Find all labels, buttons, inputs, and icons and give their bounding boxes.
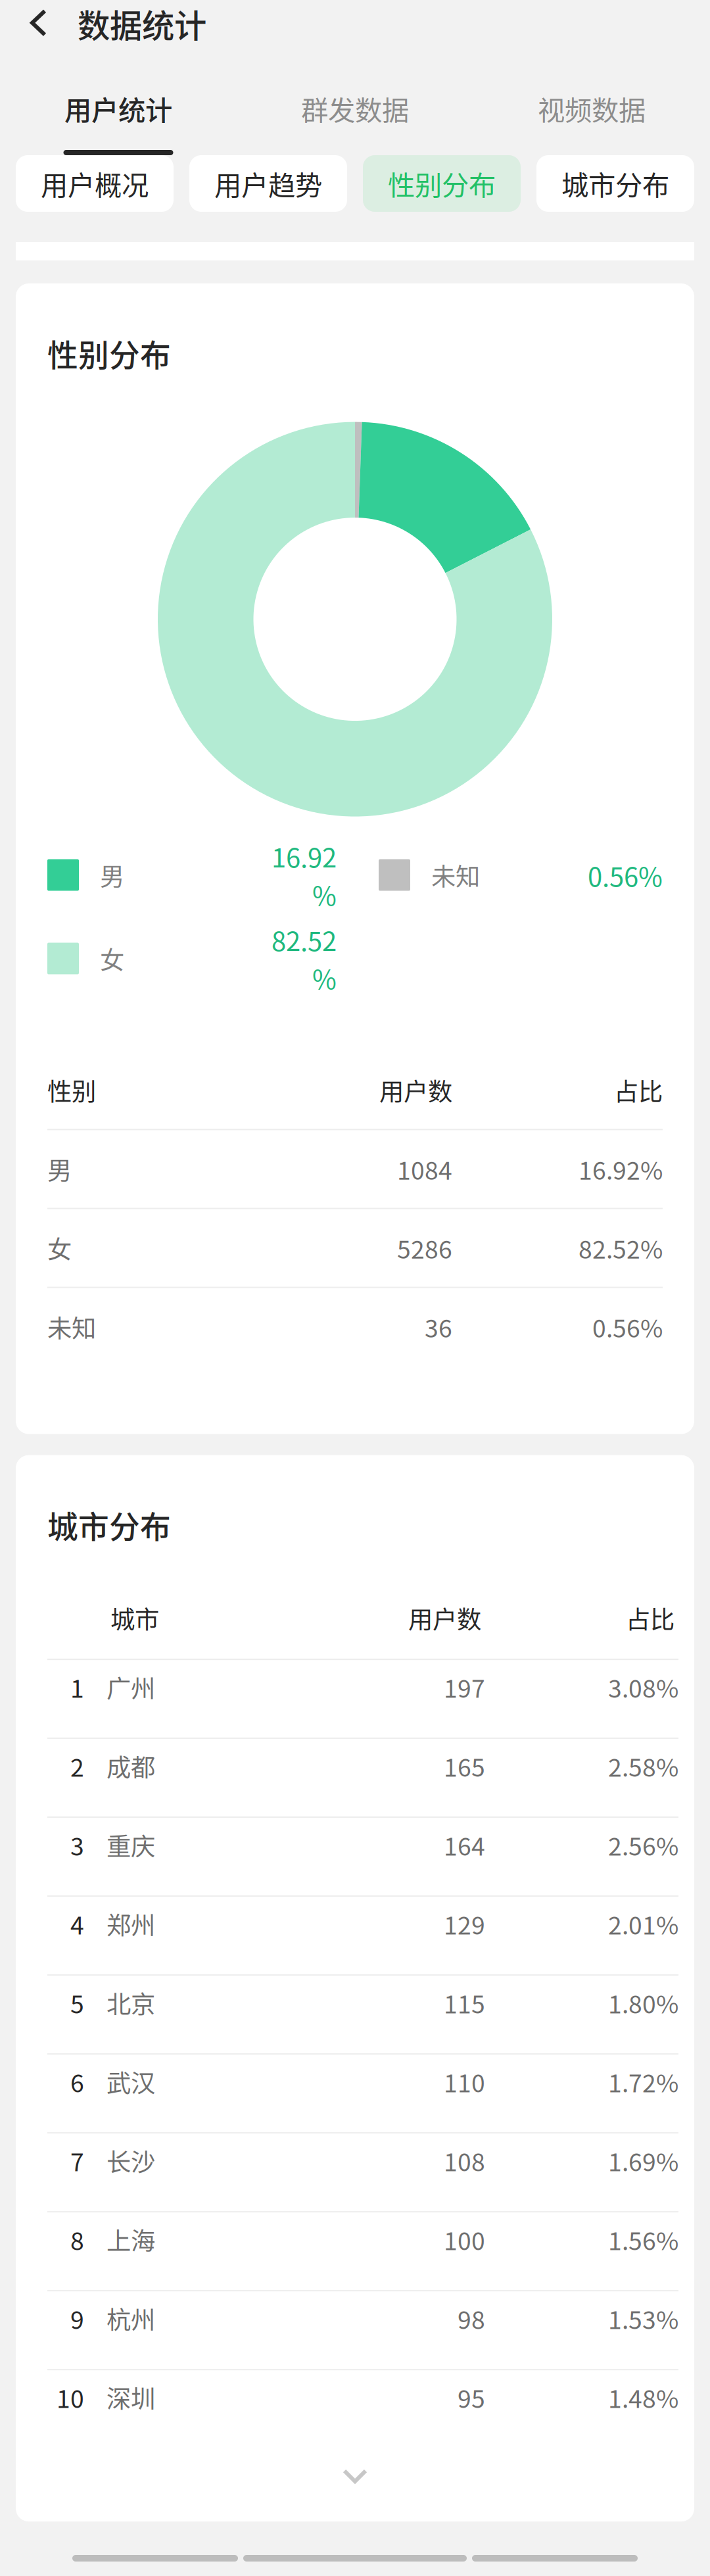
staticText: 3.08% bbox=[608, 1669, 678, 1705]
staticText: 杭州 bbox=[106, 2301, 155, 2336]
staticText: 3 bbox=[70, 1827, 84, 1863]
staticText: 城市分布 bbox=[561, 164, 669, 203]
staticText: 129 bbox=[444, 1906, 485, 1942]
staticText: 0.56% bbox=[592, 1309, 663, 1345]
staticText: 1.56% bbox=[608, 2222, 678, 2257]
button[interactable]: Expand bbox=[16, 2448, 694, 2504]
staticText: 1 bbox=[70, 1669, 84, 1705]
staticText: 9 bbox=[70, 2301, 84, 2336]
staticText: 北京 bbox=[106, 1985, 155, 2020]
staticText: 1.53% bbox=[608, 2301, 678, 2336]
staticText: 10 bbox=[57, 2379, 84, 2415]
staticText: 未知 bbox=[47, 1309, 96, 1345]
staticText: % bbox=[312, 959, 337, 997]
staticText: 郑州 bbox=[106, 1906, 155, 1942]
staticText: 8 bbox=[70, 2222, 84, 2257]
staticText: 2.01% bbox=[608, 1906, 678, 1942]
staticText: 用户数 bbox=[408, 1600, 481, 1636]
staticText: 82.52 bbox=[272, 920, 337, 959]
staticText: 女 bbox=[47, 1230, 72, 1266]
staticText: 6 bbox=[70, 2064, 84, 2099]
staticText: 108 bbox=[444, 2143, 485, 2178]
staticText: 用户统计 bbox=[64, 89, 172, 128]
staticText: 长沙 bbox=[106, 2143, 155, 2178]
button[interactable]: 用户统计 bbox=[0, 63, 237, 155]
staticText: 性别 bbox=[47, 1072, 96, 1108]
staticText: 7 bbox=[70, 2143, 84, 2178]
staticText: 2 bbox=[70, 1748, 84, 1784]
staticText: 16.92 bbox=[272, 837, 337, 875]
staticText: 2.58% bbox=[608, 1748, 678, 1784]
staticText: 95 bbox=[458, 2379, 485, 2415]
staticText: 197 bbox=[444, 1669, 485, 1705]
button[interactable]: 视频数据 bbox=[473, 63, 710, 155]
staticText: 女 bbox=[100, 941, 124, 976]
staticText: 16.92% bbox=[579, 1151, 663, 1187]
staticText: 1.72% bbox=[608, 2064, 678, 2099]
staticText: 占比 bbox=[614, 1072, 663, 1108]
staticText: 性别分布 bbox=[47, 331, 171, 375]
staticText: 成都 bbox=[106, 1748, 155, 1784]
button[interactable]: 用户概况 bbox=[16, 155, 174, 212]
staticText: 群发数据 bbox=[301, 89, 409, 128]
staticText: 性别分布 bbox=[388, 164, 496, 203]
staticText: 82.52% bbox=[579, 1230, 663, 1266]
button[interactable]: 群发数据 bbox=[237, 63, 473, 155]
staticText: 武汉 bbox=[106, 2064, 155, 2099]
staticText: 用户概况 bbox=[41, 164, 149, 203]
staticText: % bbox=[312, 875, 337, 913]
button[interactable]: Back bbox=[0, 0, 78, 56]
staticText: 1084 bbox=[397, 1151, 452, 1187]
staticText: 用户趋势 bbox=[214, 164, 322, 203]
staticText: 1.80% bbox=[608, 1985, 678, 2020]
staticText: 98 bbox=[458, 2301, 485, 2336]
staticText: 2.56% bbox=[608, 1827, 678, 1863]
staticText: 0.56% bbox=[588, 856, 663, 894]
staticText: 100 bbox=[444, 2222, 485, 2257]
staticText: 占比 bbox=[626, 1600, 674, 1636]
staticText: 36 bbox=[425, 1309, 452, 1345]
staticText: 5286 bbox=[397, 1230, 452, 1266]
staticText: 男 bbox=[100, 857, 124, 893]
staticText: 115 bbox=[444, 1985, 485, 2020]
staticText: 城市分布 bbox=[47, 1502, 171, 1547]
staticText: 上海 bbox=[106, 2222, 155, 2257]
staticText: 视频数据 bbox=[538, 89, 646, 128]
staticText: 4 bbox=[70, 1906, 84, 1942]
staticText: 1.48% bbox=[608, 2379, 678, 2415]
staticText: 深圳 bbox=[106, 2379, 155, 2415]
staticText: 重庆 bbox=[106, 1827, 155, 1863]
staticText: 男 bbox=[47, 1151, 72, 1187]
staticText: 未知 bbox=[431, 857, 480, 893]
button[interactable]: 用户趋势 bbox=[189, 155, 347, 212]
staticText: 广州 bbox=[106, 1669, 155, 1705]
staticText: 164 bbox=[444, 1827, 485, 1863]
staticText: 用户数 bbox=[379, 1072, 452, 1108]
staticText: 数据统计 bbox=[78, 0, 206, 47]
staticText: 城市 bbox=[110, 1600, 159, 1636]
staticText: 5 bbox=[70, 1985, 84, 2020]
staticText: 110 bbox=[444, 2064, 485, 2099]
staticText: 165 bbox=[444, 1748, 485, 1784]
button[interactable]: 城市分布 bbox=[536, 155, 694, 212]
staticText: 1.69% bbox=[608, 2143, 678, 2178]
button[interactable]: 性别分布 bbox=[363, 155, 521, 212]
